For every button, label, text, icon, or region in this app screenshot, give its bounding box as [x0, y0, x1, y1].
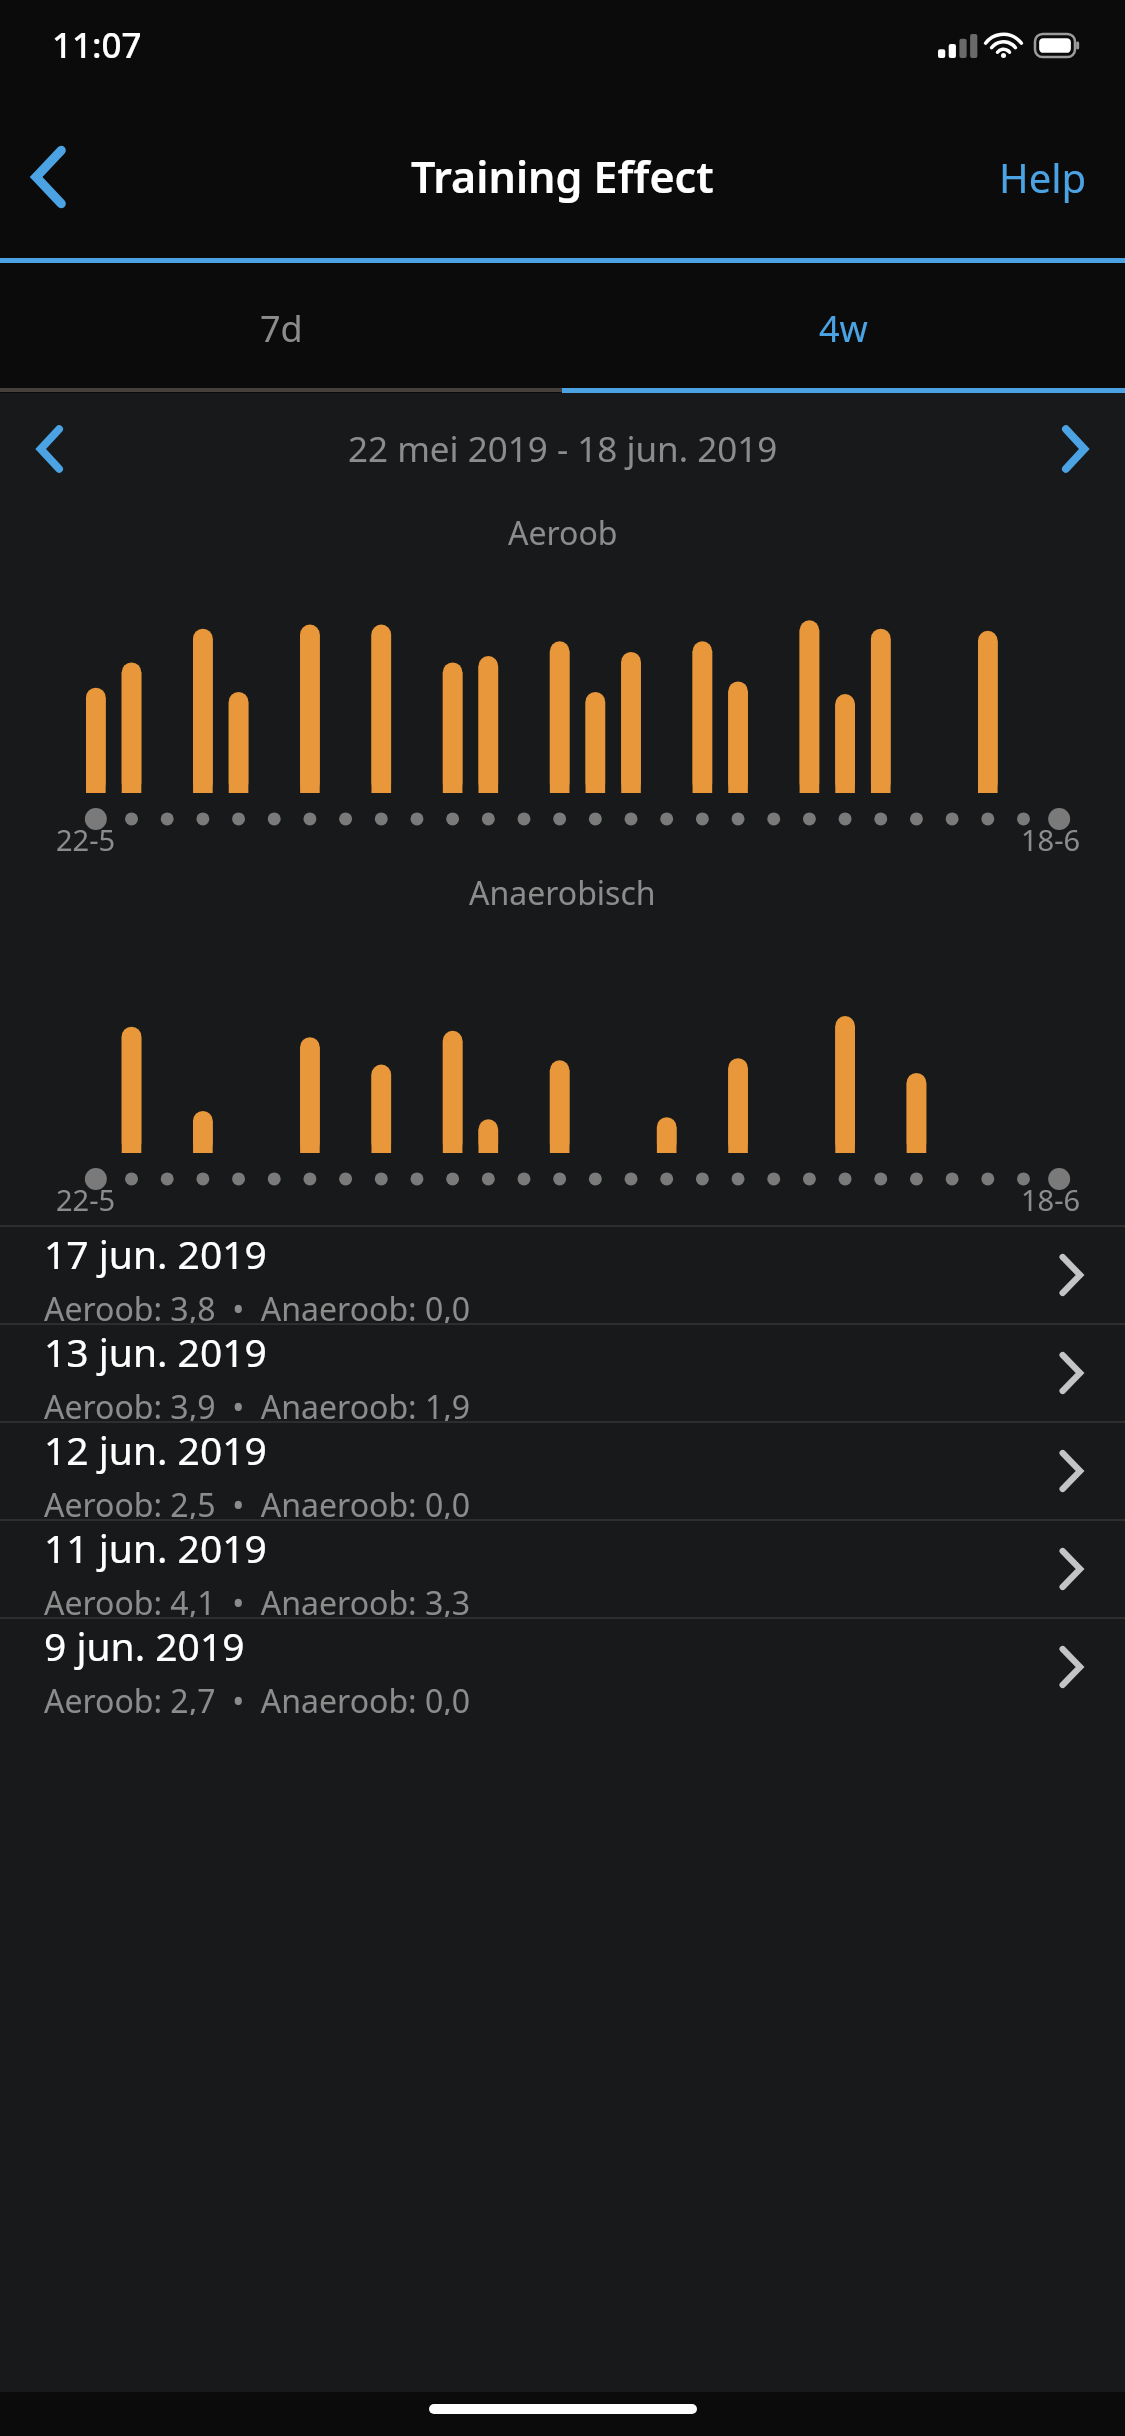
staticText: 11:07 [52, 21, 142, 69]
button[interactable]: Previous period [8, 407, 92, 491]
staticText: Help [999, 150, 1087, 204]
staticText: Anaerobisch [469, 871, 656, 915]
button[interactable]: 13 jun. 2019 [0, 1325, 1125, 1421]
staticText: 4w [819, 304, 868, 353]
staticText: 22 mei 2019 - 18 jun. 2019 [348, 425, 778, 473]
staticText: Aeroob: 2,7 • Anaeroob: 0,0 [44, 1679, 471, 1715]
staticText: 11 jun. 2019 [44, 1521, 267, 1574]
button[interactable]: 4w [562, 263, 1125, 393]
button[interactable]: 17 jun. 2019 [0, 1227, 1125, 1323]
staticText: 18-6 [1021, 820, 1081, 859]
staticText: Aeroob: 4,1 • Anaeroob: 3,3 [44, 1581, 471, 1617]
staticText: 12 jun. 2019 [44, 1423, 267, 1476]
staticText: 7d [260, 304, 303, 353]
button[interactable]: Next period [1033, 407, 1117, 491]
button[interactable]: 12 jun. 2019 [0, 1423, 1125, 1519]
staticText: 13 jun. 2019 [44, 1325, 267, 1378]
staticText: 9 jun. 2019 [44, 1619, 245, 1672]
staticText: Aeroob [508, 511, 618, 555]
button[interactable]: 11 jun. 2019 [0, 1521, 1125, 1617]
staticText: 17 jun. 2019 [44, 1227, 267, 1280]
staticText: 18-6 [1021, 1180, 1081, 1219]
staticText: 22-5 [56, 1180, 116, 1219]
button[interactable]: Back [6, 134, 92, 220]
staticText: Aeroob: 3,9 • Anaeroob: 1,9 [44, 1385, 471, 1421]
staticText: Aeroob: 2,5 • Anaeroob: 0,0 [44, 1483, 471, 1519]
button[interactable]: Help [999, 150, 1087, 204]
button[interactable]: 7d [0, 263, 562, 393]
button[interactable]: 9 jun. 2019 [0, 1619, 1125, 1715]
staticText: Training Effect [411, 147, 714, 206]
staticText: 22-5 [56, 820, 116, 859]
staticText: Aeroob: 3,8 • Anaeroob: 0,0 [44, 1287, 471, 1323]
